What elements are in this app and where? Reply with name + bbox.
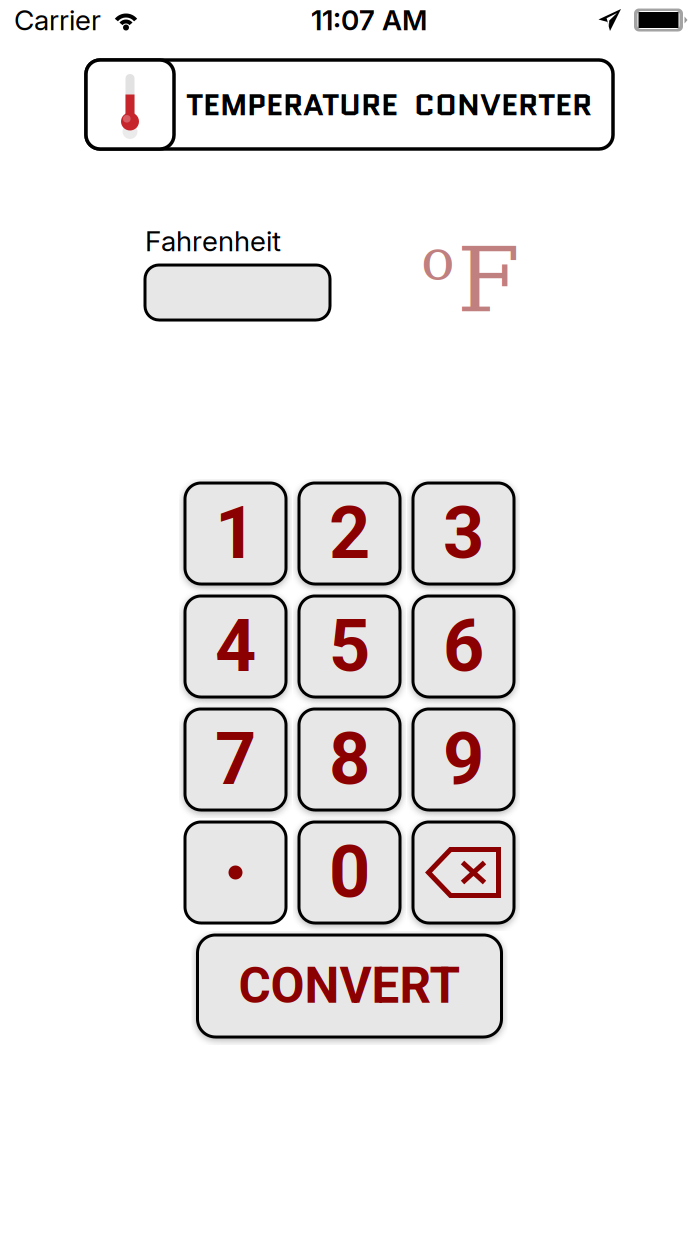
staticText: Carrier (14, 3, 101, 37)
button[interactable]: 9 (413, 709, 514, 810)
button[interactable]: 3 (413, 483, 514, 584)
button[interactable]: 1 (185, 483, 286, 584)
staticText: 6 (443, 604, 484, 689)
staticText: 11:07 AM (311, 3, 427, 37)
staticText: 0 (329, 830, 370, 915)
staticText: Fahrenheit (145, 224, 281, 258)
staticText: 3 (443, 491, 484, 576)
staticText: 5 (329, 604, 370, 689)
staticText: 7 (215, 717, 256, 802)
staticText: 1 (215, 491, 256, 576)
button[interactable]: 5 (299, 596, 400, 697)
button[interactable]: 7 (185, 709, 286, 810)
staticText: 8 (329, 717, 370, 802)
staticText: CONVERT (238, 957, 460, 1015)
button[interactable]: 4 (185, 596, 286, 697)
button[interactable]: Delete (413, 822, 514, 923)
staticText: 4 (215, 604, 256, 689)
staticText: o (421, 227, 455, 292)
button[interactable]: Decimal point (185, 822, 286, 923)
staticText: 9 (443, 717, 484, 802)
staticText: TEMPERATURE CONVERTER (186, 83, 592, 126)
button[interactable]: 2 (299, 483, 400, 584)
staticText: 2 (329, 491, 370, 576)
button[interactable]: 8 (299, 709, 400, 810)
staticText: F (457, 227, 520, 332)
button[interactable]: 6 (413, 596, 514, 697)
button[interactable]: 0 (299, 822, 400, 923)
button[interactable]: CONVERT (197, 935, 501, 1037)
